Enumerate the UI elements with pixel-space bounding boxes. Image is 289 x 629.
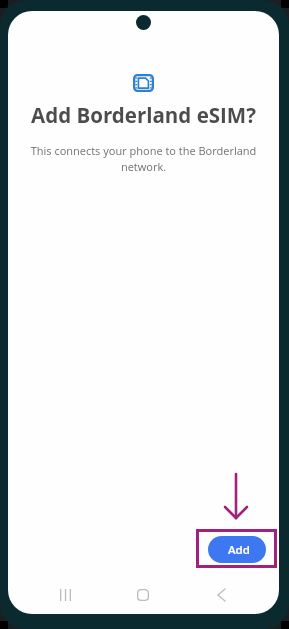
staticText: Add Borderland eSIM? <box>8 101 279 129</box>
button[interactable]: Recent apps <box>27 578 104 611</box>
staticText: This connects your phone to the Borderla… <box>24 143 263 174</box>
button[interactable]: Back <box>182 578 260 611</box>
button[interactable]: Add <box>208 536 266 563</box>
staticText: Add <box>228 542 250 558</box>
button[interactable]: Home <box>104 578 182 611</box>
